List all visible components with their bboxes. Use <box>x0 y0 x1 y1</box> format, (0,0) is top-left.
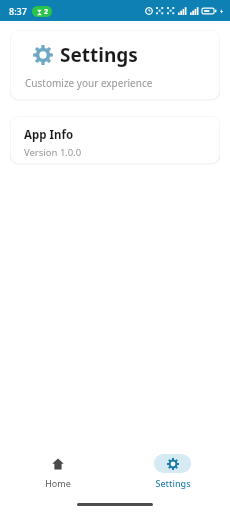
staticText: Customize your experience <box>25 76 153 90</box>
other: Settings <box>154 454 191 473</box>
staticText: Home <box>45 477 71 489</box>
other: Home <box>39 454 76 473</box>
button[interactable]: Settings <box>10 30 220 103</box>
button[interactable]: App Info <box>10 116 220 171</box>
staticText: Settings <box>60 42 138 68</box>
staticText: 2 <box>44 7 49 17</box>
staticText: Version 1.0.0 <box>24 146 82 159</box>
button[interactable]: Settings <box>115 450 230 493</box>
button[interactable]: Home <box>0 450 115 493</box>
staticText: Settings <box>155 477 191 489</box>
staticText: App Info <box>24 127 74 143</box>
staticText: 8:37 <box>9 5 27 17</box>
